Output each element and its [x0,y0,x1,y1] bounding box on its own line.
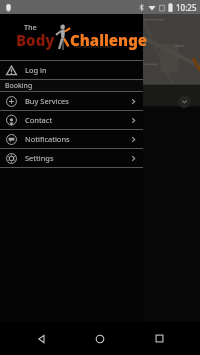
button[interactable]: Contact [0,111,143,129]
button[interactable]: Collapse [178,95,191,108]
button[interactable]: The [0,14,143,60]
staticText: your dance to be better [74,44,113,49]
staticText: Settings [25,153,54,163]
button[interactable]: Notifications [0,130,143,148]
staticText: Booking [5,81,33,91]
staticText: Body [16,30,55,50]
staticText: Buy Services [25,96,69,106]
button[interactable]: Settings [0,149,143,167]
button[interactable]: Recent apps [142,322,176,355]
staticText: Notifications [25,134,70,144]
staticText: The [24,23,37,33]
staticText: Contact [25,115,53,125]
staticText: Challenge [70,30,148,50]
button[interactable]: Log in [0,61,143,79]
button[interactable]: Back [25,322,59,355]
staticText: Log in [25,65,47,75]
button[interactable]: Home [83,322,117,355]
staticText: 10:25 [176,2,197,13]
button[interactable]: Buy Services [0,92,143,110]
